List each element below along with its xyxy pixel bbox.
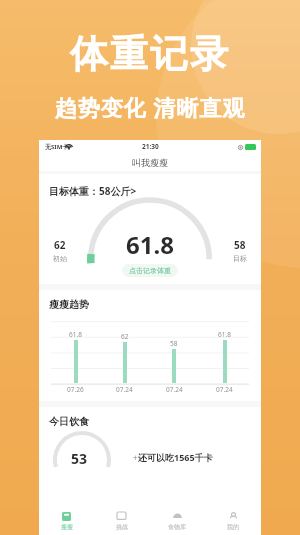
button[interactable]: 瘦瘦 <box>39 508 94 535</box>
staticText: 还可以吃1565千卡 <box>138 451 213 463</box>
staticText: 初始 <box>53 254 67 263</box>
staticText: 叫我瘦瘦 <box>132 157 168 168</box>
staticText: 食物库 <box>168 523 186 531</box>
staticText: 点击记录体重 <box>129 266 171 275</box>
button[interactable]: 挑战 <box>94 508 149 535</box>
button[interactable]: 61.8 <box>122 228 178 277</box>
staticText: 61.8 <box>69 330 82 339</box>
staticText: 62 <box>121 332 129 341</box>
button[interactable]: 我的 <box>205 508 261 535</box>
staticText: 挑战 <box>116 523 128 531</box>
staticText: 07.26 <box>67 385 84 394</box>
staticText: 07.24 <box>216 385 233 394</box>
staticText: + <box>133 452 138 463</box>
staticText: 无SIM卡 <box>45 143 69 151</box>
staticText: 53 <box>71 449 88 468</box>
staticText: 瘦瘦趋势 <box>49 298 89 311</box>
staticText: 瘦瘦 <box>61 523 73 531</box>
staticText: 目标体重： <box>49 185 99 198</box>
staticText: 我的 <box>227 523 239 531</box>
staticText: 今日饮食 <box>49 415 89 428</box>
button[interactable]: 目标体重： <box>39 182 261 200</box>
staticText: 61.8 <box>126 228 174 261</box>
staticText: 58 <box>170 339 178 348</box>
staticText: 62 <box>54 238 66 252</box>
staticText: 目标 <box>233 254 247 263</box>
staticText: 61.8 <box>218 330 231 339</box>
staticText: 趋势变化 清晰直观 <box>0 92 300 122</box>
button[interactable]: 食物库 <box>149 508 205 535</box>
staticText: 21:30 <box>142 142 159 151</box>
staticText: 07.24 <box>166 385 183 394</box>
staticText: 58公斤> <box>99 184 137 198</box>
staticText: 体重记录 <box>0 30 300 78</box>
staticText: 58 <box>234 238 246 252</box>
staticText: 07.24 <box>116 385 133 394</box>
